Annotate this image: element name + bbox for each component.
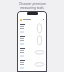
button[interactable] (20, 23, 44, 35)
staticText: measuring tools (20, 6, 44, 10)
staticText: Discover premium (19, 2, 46, 6)
button[interactable] (20, 35, 44, 47)
button[interactable] (20, 47, 44, 59)
button[interactable] (20, 59, 44, 71)
